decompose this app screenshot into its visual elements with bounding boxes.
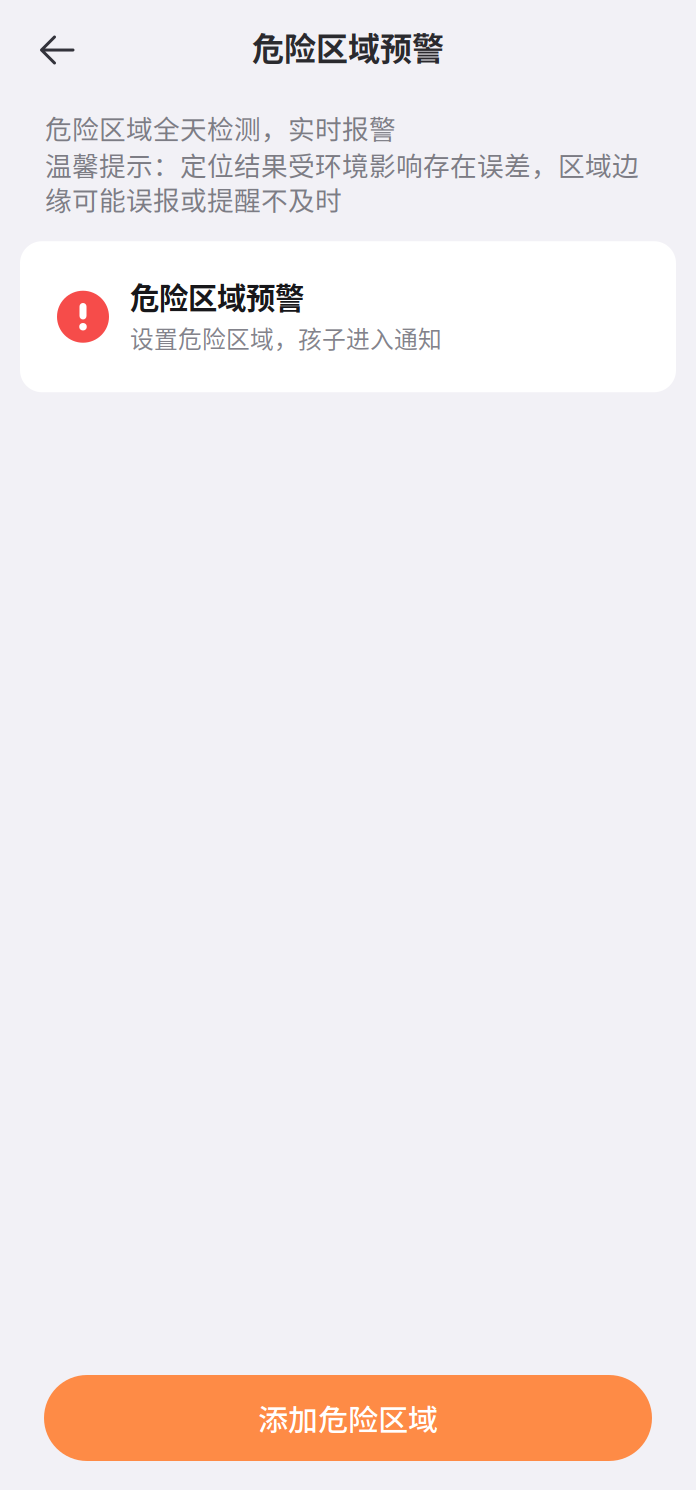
button[interactable]: 返回: [22, 13, 92, 87]
staticText: 添加危险区域: [258, 1396, 438, 1440]
staticText: 危险区域全天检测，实时报警: [45, 108, 396, 147]
staticText: 危险区域预警: [252, 23, 444, 70]
staticText: 危险区域预警: [130, 275, 304, 317]
staticText: 温馨提示：定位结果受环境影响存在误差，区域边缘可能误报或提醒不及时: [45, 145, 639, 218]
button[interactable]: 添加危险区域: [44, 1375, 652, 1461]
button[interactable]: 危险区域预警: [20, 241, 676, 392]
staticText: 设置危险区域，孩子进入通知: [130, 320, 442, 355]
